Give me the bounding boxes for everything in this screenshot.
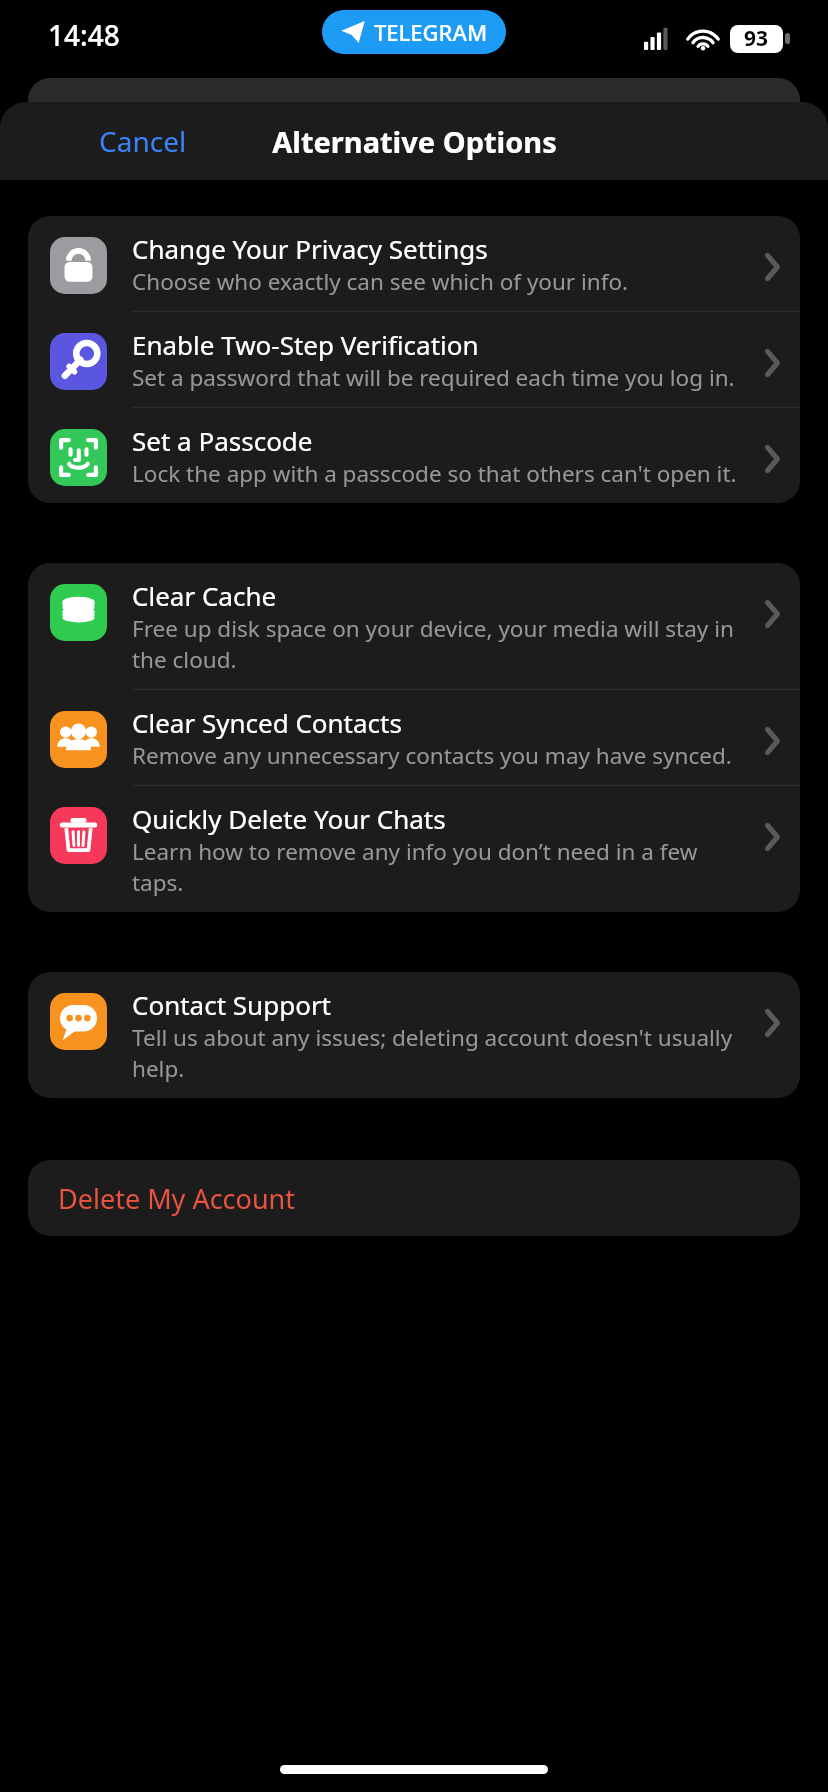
button[interactable]: Enable Two-Step Verification	[28, 312, 800, 408]
staticText: TELEGRAM	[374, 17, 488, 47]
staticText: Lock the app with a passcode so that oth…	[132, 458, 737, 489]
button[interactable]: Set a Passcode	[28, 408, 800, 503]
staticText: Delete My Account	[58, 1180, 296, 1217]
button[interactable]: Contact Support	[28, 972, 800, 1098]
staticText: Alternative Options	[272, 122, 557, 161]
staticText: Learn how to remove any info you don’t n…	[132, 836, 753, 898]
staticText: Free up disk space on your device, your …	[132, 613, 753, 675]
staticText: Set a password that will be required eac…	[132, 362, 735, 393]
staticText: Quickly Delete Your Chats	[132, 801, 446, 836]
button[interactable]: Clear Cache	[28, 563, 800, 690]
staticText: Tell us about any issues; deleting accou…	[132, 1022, 753, 1084]
button[interactable]: Change Your Privacy Settings	[28, 216, 800, 312]
staticText: Choose who exactly can see which of your…	[132, 266, 629, 297]
staticText: Clear Cache	[132, 578, 277, 613]
button[interactable]: Delete My Account	[28, 1160, 800, 1236]
staticText: Contact Support	[132, 987, 332, 1022]
staticText: Change Your Privacy Settings	[132, 231, 488, 266]
staticText: 93	[744, 24, 769, 53]
staticText: Clear Synced Contacts	[132, 705, 402, 740]
staticText: 14:48	[48, 16, 120, 54]
button[interactable]: Quickly Delete Your Chats	[28, 786, 800, 912]
staticText: Enable Two-Step Verification	[132, 327, 479, 362]
other: Telegram	[340, 17, 488, 47]
staticText: Set a Passcode	[132, 423, 313, 458]
staticText: Remove any unnecessary contacts you may …	[132, 740, 732, 771]
button[interactable]: Cancel	[93, 116, 193, 166]
button[interactable]: Clear Synced Contacts	[28, 690, 800, 786]
